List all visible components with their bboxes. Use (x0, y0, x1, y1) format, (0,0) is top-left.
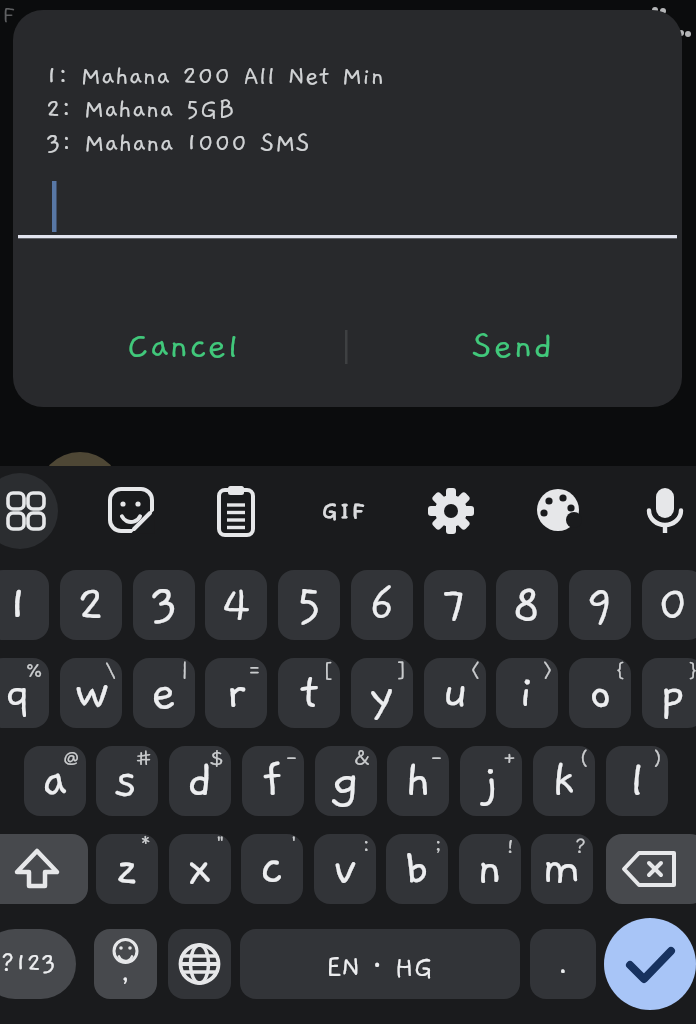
button[interactable]: a (24, 746, 86, 816)
button[interactable]: e (133, 658, 195, 728)
button[interactable]: m (531, 834, 593, 904)
button[interactable] (103, 483, 159, 539)
staticText: Cancel (127, 327, 240, 367)
button[interactable]: v (314, 834, 376, 904)
button[interactable]: 5 (278, 570, 340, 640)
button[interactable]: p (642, 658, 696, 728)
staticText: \ (105, 659, 117, 683)
staticText: = (247, 659, 262, 683)
button[interactable]: 4 (205, 570, 267, 640)
button[interactable] (94, 929, 157, 999)
button[interactable]: c (241, 834, 303, 904)
button[interactable]: z (96, 834, 158, 904)
button[interactable]: ?123 (0, 929, 76, 999)
staticText: ] (395, 659, 408, 683)
staticText: 8 (512, 578, 542, 632)
button[interactable] (530, 483, 586, 539)
button[interactable]: s (96, 746, 158, 816)
staticText: ; (434, 835, 443, 859)
button[interactable]: 9 (569, 570, 631, 640)
staticText: v (333, 842, 358, 896)
staticText: % (25, 659, 44, 683)
button[interactable]: 2 (60, 570, 122, 640)
button[interactable]: b (386, 834, 448, 904)
staticText: GIF (322, 498, 367, 524)
button[interactable]: x (169, 834, 231, 904)
staticText: j (484, 754, 499, 808)
staticText: f (263, 754, 283, 808)
staticText: Send (472, 327, 554, 367)
staticText: + (502, 747, 517, 771)
staticText: : (362, 835, 371, 859)
staticText: c (260, 842, 284, 896)
button[interactable]: l (606, 746, 668, 816)
staticText: u (442, 666, 469, 720)
button[interactable]: Send (438, 321, 588, 373)
button[interactable]: n (459, 834, 521, 904)
staticText: 4 (221, 578, 251, 632)
button[interactable]: 7 (424, 570, 486, 640)
button[interactable] (604, 918, 696, 1010)
button[interactable]: q (0, 658, 49, 728)
staticText: b (404, 842, 430, 896)
button[interactable]: 6 (351, 570, 413, 640)
button[interactable]: d (169, 746, 231, 816)
button[interactable]: 3 (133, 570, 195, 640)
staticText: ? (574, 835, 588, 859)
staticText: e (151, 666, 177, 720)
staticText: t (300, 666, 319, 720)
button[interactable]: y (351, 658, 413, 728)
staticText: x (187, 842, 213, 896)
button[interactable] (606, 834, 696, 904)
staticText: > (542, 659, 553, 683)
staticText: w (74, 666, 109, 720)
staticText: k (552, 754, 576, 808)
button[interactable]: o (569, 658, 631, 728)
button[interactable] (0, 834, 88, 904)
button[interactable]: . (530, 929, 596, 999)
button[interactable]: 1 (0, 570, 49, 640)
staticText: d (187, 754, 213, 808)
staticText: 0 (658, 578, 689, 632)
button[interactable]: g (315, 746, 377, 816)
button[interactable] (637, 483, 693, 539)
staticText: } (688, 659, 696, 683)
staticText: F (2, 2, 15, 28)
button[interactable]: 0 (642, 570, 696, 640)
staticText: ) (652, 747, 663, 771)
button[interactable]: i (496, 658, 558, 728)
button[interactable]: u (424, 658, 486, 728)
staticText: q (5, 666, 31, 720)
staticText: m (542, 842, 582, 896)
staticText: 6 (369, 578, 396, 632)
button[interactable] (168, 929, 231, 999)
button[interactable]: k (533, 746, 595, 816)
button[interactable]: Cancel (108, 321, 258, 373)
staticText: i (519, 666, 535, 720)
button[interactable]: r (205, 658, 267, 728)
button[interactable]: w (60, 658, 122, 728)
staticText: " (215, 835, 226, 859)
staticText: - (429, 747, 444, 771)
staticText: & (353, 747, 372, 771)
staticText: # (135, 747, 153, 771)
staticText: 2 (77, 578, 106, 632)
staticText: @ (62, 747, 81, 771)
button[interactable] (0, 483, 54, 539)
staticText: ! (505, 835, 516, 859)
button[interactable] (208, 483, 264, 539)
staticText: [ (322, 659, 335, 683)
button[interactable]: f (242, 746, 304, 816)
button[interactable]: t (278, 658, 340, 728)
staticText: | (180, 659, 190, 683)
staticText: . (557, 947, 569, 981)
staticText: n (477, 842, 503, 896)
button[interactable]: GIF (304, 489, 384, 533)
button[interactable] (423, 483, 479, 539)
button[interactable]: j (460, 746, 522, 816)
button[interactable]: EN · HG (240, 929, 520, 999)
button[interactable]: 8 (496, 570, 558, 640)
staticText: , (120, 958, 131, 988)
button[interactable]: h (387, 746, 449, 816)
staticText: * (139, 835, 153, 859)
